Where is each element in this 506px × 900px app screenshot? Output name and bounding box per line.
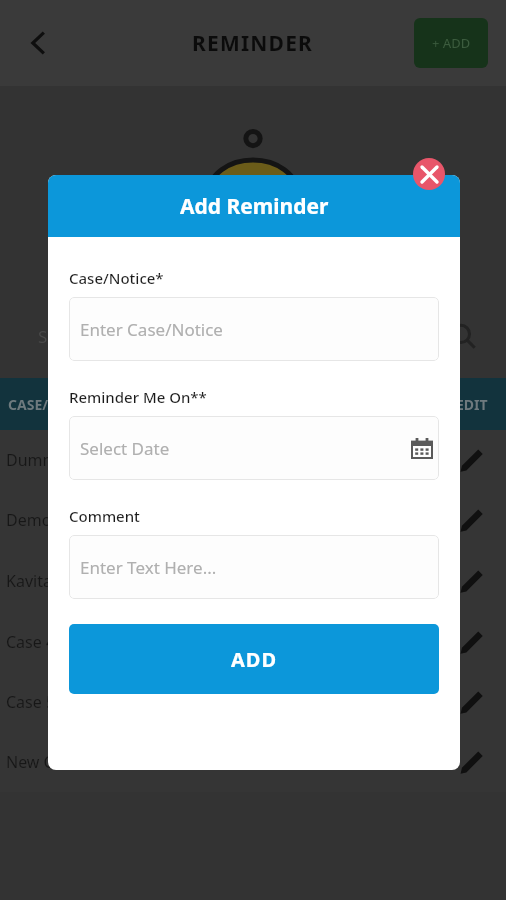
button[interactable]: Edit [458, 568, 484, 594]
staticText: CASE/NOTICE [8, 395, 456, 414]
button[interactable]: Enter Case/Notice [69, 297, 439, 361]
staticText: REMINDER [192, 29, 314, 58]
staticText: Select Date [80, 437, 170, 460]
staticText: Reminder Me On** [69, 387, 207, 407]
button[interactable]: Edit [458, 689, 484, 715]
button[interactable]: Edit [458, 749, 484, 775]
staticText: Search [38, 325, 92, 348]
staticText: Kavita vs State [6, 570, 458, 592]
button[interactable]: Back [14, 19, 62, 67]
staticText: Demo Notice [6, 509, 458, 531]
staticText: ADD [231, 646, 278, 673]
button[interactable]: Edit [458, 507, 484, 533]
button[interactable]: ADD [69, 624, 439, 694]
button[interactable]: Case 5 [0, 672, 506, 732]
staticText: Case 4 [6, 631, 458, 653]
button[interactable]: + ADD [414, 18, 488, 68]
button[interactable]: Demo Notice [0, 490, 506, 550]
button[interactable]: Case 4 [0, 612, 506, 672]
staticText: EDIT [456, 395, 488, 414]
staticText: Dummy Case [6, 449, 458, 471]
button[interactable]: Close [413, 158, 445, 190]
staticText: New Case [6, 751, 458, 773]
button[interactable]: Edit [458, 629, 484, 655]
staticText: Enter Case/Notice [80, 318, 223, 341]
button[interactable]: Edit [458, 447, 484, 473]
staticText: + ADD [432, 34, 471, 52]
staticText: Comment [69, 506, 140, 526]
button[interactable]: Dummy Case [0, 430, 506, 490]
staticText: Enter Text Here... [80, 556, 217, 579]
button[interactable]: New Case [0, 732, 506, 792]
button[interactable]: Kavita vs State [0, 550, 506, 612]
staticText: Case 5 [6, 691, 458, 713]
button[interactable]: Select Date [69, 416, 439, 480]
staticText: Add Reminder [180, 192, 329, 221]
button[interactable]: Enter Text Here... [69, 535, 439, 599]
staticText: Case/Notice* [69, 268, 164, 288]
